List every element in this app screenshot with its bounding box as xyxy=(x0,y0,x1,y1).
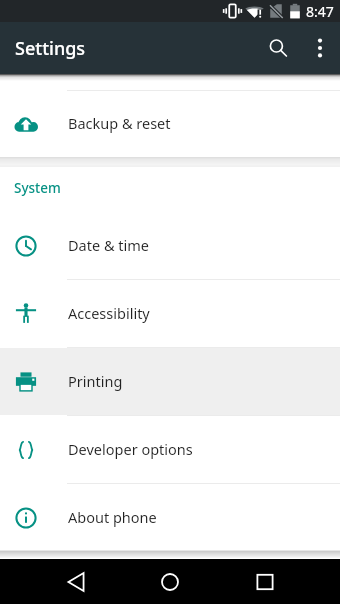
button[interactable]: About phone xyxy=(0,484,340,551)
staticText: Backup & reset xyxy=(68,113,171,133)
staticText: About phone xyxy=(68,507,157,527)
staticText: Accessibility xyxy=(68,303,150,323)
staticText: Printing xyxy=(68,371,123,391)
button[interactable]: Accessibility xyxy=(0,280,340,347)
staticText: 8:47 xyxy=(306,2,334,21)
button[interactable]: Home xyxy=(145,559,194,604)
staticText: System xyxy=(14,179,61,197)
button[interactable]: Developer options xyxy=(0,416,340,483)
staticText: Date & time xyxy=(68,235,149,255)
button[interactable]: Back xyxy=(51,559,100,604)
staticText: Settings xyxy=(15,36,86,61)
button[interactable]: Search xyxy=(256,26,300,70)
button[interactable]: Printing xyxy=(0,348,340,415)
button[interactable]: Recent apps xyxy=(240,559,289,604)
button[interactable]: More options xyxy=(300,28,340,68)
button[interactable]: Backup & reset xyxy=(0,91,340,157)
staticText: Developer options xyxy=(68,439,193,459)
button[interactable]: Date & time xyxy=(0,212,340,279)
